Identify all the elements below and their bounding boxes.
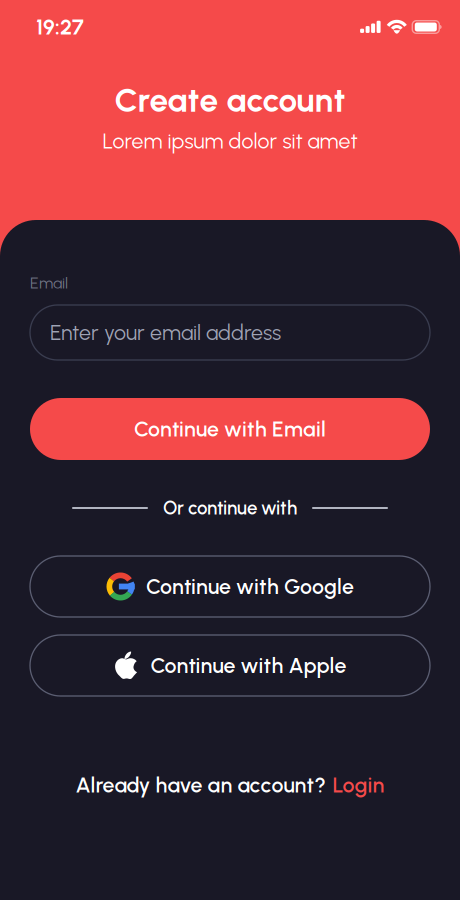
button[interactable]: Enter your email address xyxy=(30,305,430,360)
staticText: Login xyxy=(332,772,384,798)
button[interactable]: Continue with Email xyxy=(30,398,430,460)
staticText: Enter your email address xyxy=(50,320,281,345)
staticText: Already have an account? xyxy=(75,772,325,798)
staticText: Lorem ipsum dolor sit amet xyxy=(102,128,357,154)
staticText: Or continue with xyxy=(163,497,297,519)
button[interactable]: Continue with Apple xyxy=(30,635,430,696)
button[interactable]: Continue with Google xyxy=(30,556,430,617)
staticText: Continue with Email xyxy=(134,416,326,442)
staticText: Create account xyxy=(114,80,345,120)
button[interactable]: Already have an account? xyxy=(0,773,460,797)
staticText: Continue with Apple xyxy=(150,653,346,678)
staticText: 19:27 xyxy=(36,14,84,40)
staticText: Continue with Google xyxy=(146,574,354,599)
staticText: Email xyxy=(30,273,68,293)
